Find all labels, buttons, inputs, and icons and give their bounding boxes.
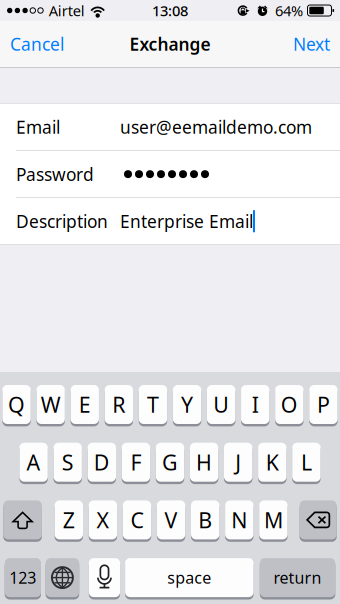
button[interactable]: Y bbox=[173, 385, 201, 426]
button[interactable]: Q bbox=[2, 385, 31, 426]
staticText: 64% bbox=[275, 1, 303, 20]
staticText: 123 bbox=[9, 567, 36, 588]
staticText: J bbox=[235, 448, 241, 476]
button[interactable]: V bbox=[157, 500, 185, 542]
button[interactable]: return bbox=[260, 558, 335, 599]
button[interactable]: N bbox=[225, 500, 253, 542]
staticText: T bbox=[147, 390, 159, 419]
staticText: R bbox=[112, 390, 125, 419]
button[interactable]: space bbox=[125, 558, 254, 599]
button[interactable]: X bbox=[89, 500, 117, 542]
button[interactable]: J bbox=[224, 443, 252, 484]
staticText: H bbox=[196, 448, 212, 476]
button[interactable]: C bbox=[123, 500, 151, 542]
staticText: Y bbox=[181, 390, 193, 419]
button[interactable]: Shift bbox=[3, 500, 42, 542]
staticText: P bbox=[317, 390, 330, 419]
button[interactable]: L bbox=[292, 443, 321, 484]
staticText: space bbox=[167, 567, 211, 588]
staticText: U bbox=[213, 390, 229, 419]
button[interactable]: F bbox=[122, 443, 150, 484]
button[interactable]: Description bbox=[0, 198, 340, 244]
button[interactable]: W bbox=[36, 385, 65, 426]
button[interactable]: Z bbox=[55, 500, 83, 542]
staticText: I bbox=[252, 390, 259, 419]
staticText: Airtel bbox=[49, 1, 85, 20]
button[interactable]: E bbox=[70, 385, 99, 426]
button[interactable]: U bbox=[207, 385, 235, 426]
staticText: Enterprise Email bbox=[120, 210, 253, 233]
button[interactable]: 123 bbox=[5, 558, 41, 599]
button[interactable]: Email bbox=[0, 104, 340, 150]
button[interactable]: M bbox=[259, 500, 288, 542]
button[interactable]: D bbox=[88, 443, 116, 484]
button[interactable]: Next keyboard bbox=[46, 558, 79, 599]
staticText: D bbox=[94, 448, 110, 476]
button[interactable]: R bbox=[105, 385, 133, 426]
staticText: A bbox=[27, 448, 41, 476]
button[interactable]: G bbox=[156, 443, 184, 484]
staticText: Next bbox=[293, 32, 330, 55]
staticText: C bbox=[130, 506, 143, 534]
button[interactable]: O bbox=[275, 385, 303, 426]
button[interactable]: A bbox=[19, 443, 48, 484]
staticText: return bbox=[273, 567, 321, 588]
staticText: Email bbox=[16, 115, 60, 138]
button[interactable]: I bbox=[241, 385, 269, 426]
button[interactable]: Cancel bbox=[0, 22, 74, 66]
staticText: N bbox=[231, 506, 247, 534]
staticText: X bbox=[96, 506, 109, 534]
staticText: Z bbox=[63, 506, 75, 534]
button[interactable]: B bbox=[191, 500, 219, 542]
staticText: Password bbox=[16, 163, 94, 186]
staticText: B bbox=[198, 506, 212, 534]
button[interactable]: Password bbox=[0, 151, 340, 197]
staticText: E bbox=[79, 390, 91, 419]
button[interactable]: K bbox=[258, 443, 286, 484]
button[interactable]: Next bbox=[283, 22, 340, 66]
staticText: Description bbox=[16, 210, 108, 233]
staticText: Exchange bbox=[129, 32, 210, 55]
button[interactable]: T bbox=[139, 385, 167, 426]
staticText: V bbox=[165, 506, 178, 534]
staticText: W bbox=[41, 390, 61, 419]
staticText: Q bbox=[8, 390, 25, 419]
button[interactable]: H bbox=[190, 443, 218, 484]
button[interactable]: Delete bbox=[300, 500, 337, 542]
staticText: 13:08 bbox=[152, 1, 188, 20]
staticText: O bbox=[281, 390, 298, 419]
staticText: M bbox=[264, 506, 283, 534]
staticText: G bbox=[162, 448, 178, 476]
button[interactable]: Dictation bbox=[89, 558, 120, 599]
staticText: user@eemaildemo.com bbox=[120, 115, 312, 138]
staticText: L bbox=[301, 448, 312, 476]
staticText: K bbox=[266, 448, 279, 476]
button[interactable]: S bbox=[53, 443, 82, 484]
staticText: S bbox=[62, 448, 74, 476]
staticText: F bbox=[130, 448, 141, 476]
staticText: Cancel bbox=[10, 32, 64, 55]
button[interactable]: P bbox=[309, 385, 338, 426]
